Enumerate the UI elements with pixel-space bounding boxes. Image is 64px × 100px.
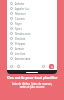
staticText: Lire livre — [15, 52, 26, 56]
staticText: Rendez-vous — [15, 32, 31, 36]
staticText: Liste de tâches, listes de courses, note… — [5, 82, 59, 88]
staticText: Courses — [15, 17, 25, 21]
button[interactable]: Payer — [7, 21, 57, 26]
button[interactable]: Préparer — [7, 41, 57, 46]
staticText: Arroser — [15, 47, 25, 51]
staticText: Préparer — [15, 42, 26, 46]
button[interactable]: Sport — [7, 26, 57, 31]
button[interactable]: Add task — [49, 64, 54, 69]
button[interactable]: Menu — [10, 65, 13, 68]
staticText: Appeler Luc — [15, 7, 30, 11]
button[interactable]: Lire livre — [7, 51, 57, 56]
staticText: Réserver — [15, 12, 26, 16]
button[interactable]: Acheter — [7, 1, 57, 6]
staticText: Sport — [15, 27, 22, 31]
button[interactable]: Search — [17, 65, 20, 68]
button[interactable]: Appeler Luc — [7, 6, 57, 11]
staticText: Anniversaire — [15, 57, 31, 61]
button[interactable]: Microphone — [42, 65, 45, 68]
staticText: Acheter — [15, 2, 25, 6]
button[interactable]: Dentiste — [7, 36, 57, 41]
button[interactable]: Arroser — [7, 46, 57, 51]
staticText: Dentiste — [15, 37, 26, 41]
button[interactable]: Anniversaire — [7, 56, 57, 61]
staticText: Payer — [15, 22, 22, 26]
staticText: Des outils pour tout planifier — [7, 75, 58, 80]
button[interactable]: Réserver — [7, 11, 57, 16]
button[interactable]: Courses — [7, 16, 57, 21]
button[interactable]: Rendez-vous — [7, 31, 57, 36]
